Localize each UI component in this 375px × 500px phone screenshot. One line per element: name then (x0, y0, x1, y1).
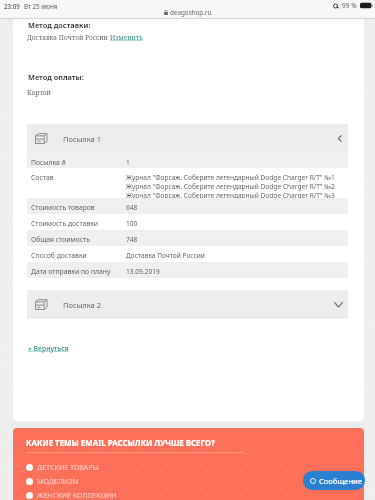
staticText: Доставка Почтой России (126, 251, 205, 260)
staticText: Состав (31, 173, 54, 182)
staticText: 748 (126, 235, 138, 244)
button[interactable]: Изменить (110, 33, 143, 42)
staticText: Стоимость доставки (31, 219, 99, 228)
staticText: 100 (126, 219, 138, 228)
staticText: Картой (27, 88, 52, 97)
button[interactable]: Посылка 2 (27, 290, 348, 319)
staticText: Стоимость товаров (31, 203, 95, 212)
button[interactable]: Сообщение (303, 471, 365, 490)
staticText: Общая стоимость (31, 235, 90, 244)
staticText: Посылка 2 (63, 300, 101, 310)
staticText: 99 % (342, 1, 357, 10)
button[interactable]: МОДЕЛИЗМ (26, 474, 79, 488)
staticText: МОДЕЛИЗМ (37, 476, 79, 486)
staticText: Метод доставки: (28, 20, 91, 30)
staticText: Журнал "Форсаж. Соберите легендарный Dod… (126, 191, 335, 200)
staticText: Способ доставки (31, 251, 87, 260)
staticText: Журнал "Форсаж. Соберите легендарный Dod… (126, 182, 335, 191)
staticText: Сообщение (319, 476, 362, 486)
staticText: Посылка # (31, 158, 66, 167)
staticText: ЖЕНСКИЕ КОЛЛЕКЦИИ (37, 490, 117, 500)
button[interactable]: ДЕТСКИЕ ТОВАРЫ (26, 460, 99, 474)
staticText: 13.09.2019 (126, 267, 160, 276)
button[interactable]: ЖЕНСКИЕ КОЛЛЕКЦИИ (26, 488, 117, 500)
button[interactable]: « Вернуться (28, 344, 69, 353)
staticText: Доставка Почтой России (27, 33, 110, 42)
staticText: 1 (126, 158, 130, 167)
staticText: 23:09 (4, 2, 20, 10)
staticText: Дата отправки по плану (31, 267, 111, 276)
staticText: Вт 25 июня (24, 2, 58, 10)
staticText: deagoshop.ru (170, 8, 212, 17)
staticText: ДЕТСКИЕ ТОВАРЫ (37, 462, 99, 472)
staticText: Посылка 1 (63, 134, 101, 144)
button[interactable]: Посылка 1 (27, 124, 348, 153)
staticText: Метод оплаты: (28, 72, 84, 82)
staticText: 648 (126, 203, 138, 212)
staticText: КАКИЕ ТЕМЫ EMAIL РАССЫЛКИ ЛУЧШЕ ВСЕГО? (26, 438, 215, 449)
staticText: Журнал "Форсаж. Соберите легендарный Dod… (126, 173, 335, 182)
